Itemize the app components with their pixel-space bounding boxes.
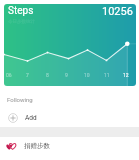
other: Donate steps — [6, 141, 16, 151]
button[interactable]: Add — [0, 107, 139, 128]
staticText: Steps — [8, 5, 34, 17]
staticText: 10256 — [102, 5, 133, 18]
staticText: 捐赠步数 — [24, 142, 50, 150]
staticText: 10 — [84, 72, 90, 78]
staticText: 9 — [65, 72, 68, 78]
button[interactable]: Steps — [4, 4, 136, 86]
staticText: Following — [7, 96, 33, 103]
button[interactable]: Donate steps — [0, 137, 139, 155]
staticText: 今日步数统计 — [8, 19, 35, 25]
staticText: Add — [25, 114, 37, 122]
staticText: 06 — [6, 72, 12, 78]
staticText: 12 — [123, 72, 129, 78]
staticText: 11 — [104, 72, 110, 78]
staticText: 8 — [46, 72, 49, 78]
staticText: 7 — [26, 72, 29, 78]
